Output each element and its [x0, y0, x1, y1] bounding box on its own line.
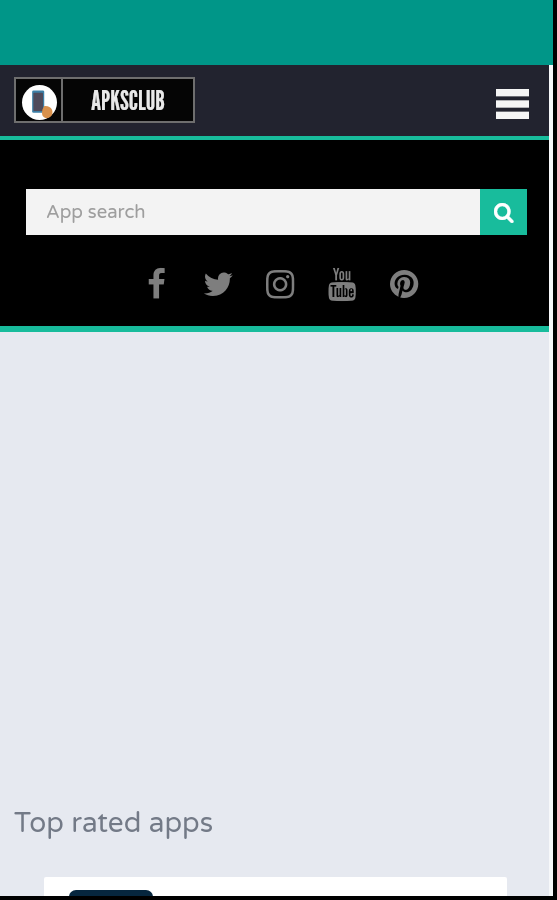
staticText: Top rated apps	[14, 806, 214, 840]
button[interactable]: Menu	[490, 83, 534, 125]
button[interactable]: Facebook	[137, 262, 175, 306]
staticText: 	[494, 202, 514, 223]
staticText: 	[328, 268, 357, 301]
staticText: 	[203, 268, 234, 301]
button[interactable]: Pinterest	[385, 262, 423, 306]
button[interactable]: Twitter	[199, 262, 237, 306]
staticText: 	[147, 268, 166, 301]
button[interactable]: Search	[480, 189, 527, 235]
staticText: App search	[46, 201, 146, 223]
staticText: 	[266, 268, 295, 301]
button[interactable]	[44, 877, 507, 896]
staticText: APKSCLUB	[91, 85, 165, 116]
button[interactable]: YouTube	[323, 262, 361, 306]
button[interactable]: App search	[26, 189, 480, 235]
button[interactable]: Instagram	[261, 262, 299, 306]
button[interactable]: APKSCLUB	[14, 77, 195, 123]
staticText: 	[390, 268, 419, 301]
